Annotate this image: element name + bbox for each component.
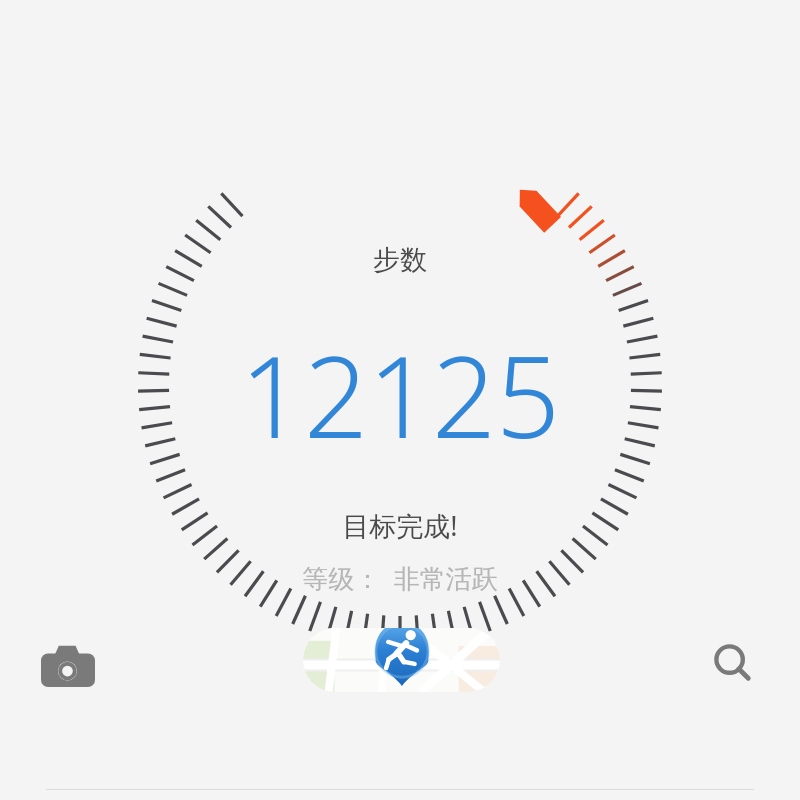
button[interactable]: Running route map <box>303 628 500 692</box>
staticText: 步数 <box>0 243 800 277</box>
staticText: 12125 <box>0 318 800 471</box>
button[interactable]: Camera <box>30 628 106 704</box>
staticText: 目标完成! <box>0 507 800 544</box>
button[interactable]: Search <box>698 628 770 700</box>
staticText: 等级： 非常活跃 <box>0 560 800 596</box>
